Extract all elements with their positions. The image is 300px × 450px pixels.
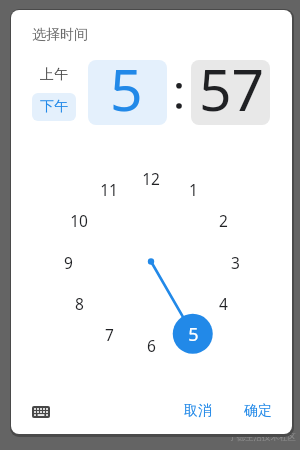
button[interactable]: 8 — [59, 283, 99, 323]
button[interactable]: 下午 — [32, 93, 76, 121]
staticText: 上午 — [40, 66, 68, 84]
button[interactable]: 11 — [89, 169, 129, 209]
button[interactable]: 取消 — [170, 394, 226, 428]
staticText: 57 — [199, 60, 265, 115]
button[interactable]: 上午 — [32, 61, 76, 89]
button[interactable]: 确定 — [230, 394, 286, 428]
button[interactable]: 9 — [48, 242, 88, 282]
button[interactable]: 1 — [173, 169, 213, 209]
button[interactable]: 10 — [59, 200, 99, 240]
button[interactable]: 4 — [203, 283, 243, 323]
button[interactable]: 3 — [215, 242, 255, 282]
staticText: 宁德生活技术社区 — [228, 432, 296, 443]
button[interactable]: 7 — [89, 314, 129, 354]
staticText: 4 — [219, 293, 228, 314]
button[interactable]: 5 — [88, 60, 167, 125]
button[interactable]: 12 — [131, 158, 171, 198]
staticText: 下午 — [40, 98, 68, 116]
staticText: 取消 — [184, 402, 212, 420]
staticText: 选择时间 — [32, 26, 88, 44]
staticText: 6 — [147, 335, 156, 356]
staticText: 确定 — [244, 402, 272, 420]
staticText: 8 — [75, 293, 84, 314]
button[interactable]: 57 — [191, 60, 270, 125]
staticText: 2 — [219, 210, 228, 231]
staticText: 7 — [105, 324, 114, 345]
staticText: 3 — [231, 252, 240, 273]
button[interactable]: 5 — [173, 314, 213, 354]
staticText: 11 — [100, 179, 118, 200]
button[interactable] — [26, 399, 56, 424]
staticText: 12 — [142, 168, 160, 189]
staticText: 1 — [189, 179, 198, 200]
button[interactable]: 6 — [131, 325, 171, 365]
staticText: 9 — [64, 252, 73, 273]
staticText: 5 — [110, 60, 143, 115]
staticText: 10 — [70, 210, 88, 231]
button[interactable]: 2 — [203, 200, 243, 240]
staticText: 5 — [188, 322, 199, 347]
